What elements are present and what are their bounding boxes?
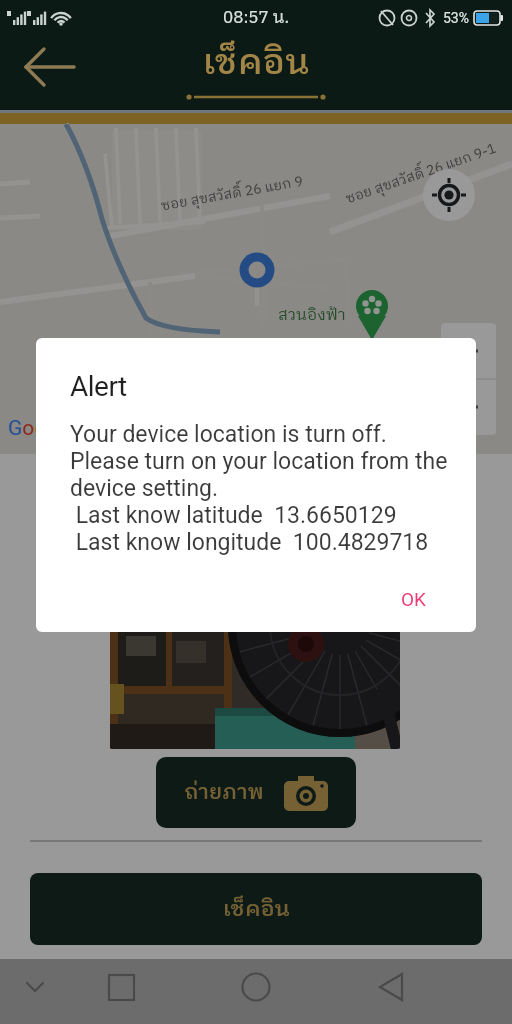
staticText: Your device location is turn off. Please… [70, 421, 448, 556]
button[interactable]: เช็คอิน [30, 873, 482, 945]
staticText: 08:57 น. [223, 4, 290, 32]
button[interactable] [256, 959, 384, 1024]
button[interactable] [384, 959, 512, 1024]
button[interactable] [0, 959, 128, 1024]
staticText: สวนอิงฟ้า [278, 302, 346, 328]
staticText: ซอย สุขสวัสดิ์ 26 แยก 9 [159, 170, 305, 217]
staticText: 53% [443, 10, 469, 26]
staticText: ซอย สุขสวัสดิ์ 26 แยก 9-1 [343, 137, 499, 210]
button[interactable] [128, 959, 256, 1024]
staticText: Alert [70, 370, 127, 403]
staticText: เช็คอิน [223, 891, 290, 927]
staticText: Google [8, 416, 75, 441]
button[interactable]: ถ่ายภาพ [156, 757, 356, 828]
staticText: เช็คอิน [203, 35, 310, 93]
button[interactable] [16, 45, 76, 89]
button[interactable]: OK [401, 588, 426, 610]
button[interactable] [423, 169, 475, 221]
staticText: ถ่ายภาพ [184, 776, 264, 811]
